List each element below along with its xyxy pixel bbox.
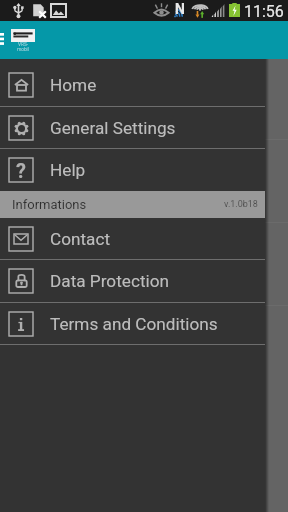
staticText: 11:56 bbox=[244, 2, 284, 21]
staticText: Help bbox=[50, 160, 86, 180]
staticText: VRS- mobil bbox=[17, 42, 29, 52]
button[interactable]: Terms and Conditions bbox=[0, 303, 265, 344]
staticText: Contact bbox=[50, 229, 111, 249]
button[interactable]: Home bbox=[0, 64, 265, 106]
staticText: Informations bbox=[12, 197, 87, 212]
staticText: ? bbox=[16, 159, 26, 182]
button[interactable]: Contact bbox=[0, 218, 265, 259]
staticText: v.1.0b18 bbox=[224, 199, 258, 210]
staticText: Home bbox=[50, 75, 97, 95]
button[interactable]: ? bbox=[0, 149, 265, 191]
staticText: Data Protection bbox=[50, 271, 169, 291]
staticText: N bbox=[175, 1, 185, 17]
staticText: Terms and Conditions bbox=[50, 314, 218, 334]
button[interactable]: Data Protection bbox=[0, 260, 265, 302]
button[interactable]: Open navigation drawer bbox=[0, 26, 14, 52]
staticText: General Settings bbox=[50, 118, 176, 138]
button[interactable]: General Settings bbox=[0, 107, 265, 148]
